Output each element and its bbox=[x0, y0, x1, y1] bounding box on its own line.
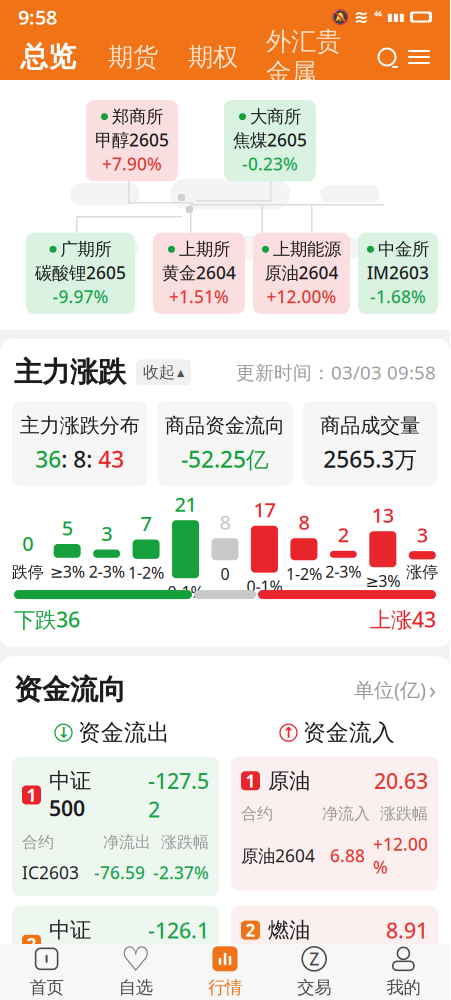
staticText: -127.52 bbox=[148, 767, 209, 823]
button[interactable]: 1 bbox=[231, 757, 438, 891]
staticText: 8 bbox=[298, 509, 309, 535]
staticText: 碳酸锂2605 bbox=[35, 261, 126, 284]
staticText: 9:58 bbox=[18, 4, 57, 30]
button[interactable]: 总览 bbox=[14, 40, 82, 74]
staticText: 首页 bbox=[30, 977, 64, 998]
staticText: 17 bbox=[253, 496, 275, 523]
staticText: 跌停 bbox=[12, 562, 44, 582]
button[interactable]: 中金所 bbox=[358, 233, 438, 314]
button[interactable]: 单位(亿) bbox=[354, 674, 436, 705]
staticText: 中证1000 bbox=[49, 917, 97, 971]
button[interactable]: 外汇贵金属 bbox=[264, 26, 343, 88]
staticText: 单位(亿) bbox=[354, 676, 426, 703]
staticText: 20.63 bbox=[374, 767, 428, 795]
button[interactable]: 行情 bbox=[180, 940, 270, 1000]
staticText: 上期所 bbox=[179, 239, 230, 260]
staticText: 净流出 bbox=[103, 832, 151, 852]
button[interactable]: 菜单 bbox=[402, 40, 436, 74]
staticText: 资金流入 bbox=[303, 719, 395, 747]
staticText: 21 bbox=[174, 491, 196, 517]
button[interactable]: 2 bbox=[12, 906, 219, 1000]
staticText: 2 bbox=[338, 521, 349, 548]
button[interactable]: 广期所 bbox=[26, 233, 135, 314]
staticText: 行情 bbox=[208, 977, 242, 998]
staticText: ≋ bbox=[354, 7, 369, 27]
button[interactable]: 郑商所 bbox=[86, 100, 178, 181]
staticText: 8 bbox=[73, 444, 86, 474]
staticText: 广期所 bbox=[60, 239, 111, 260]
staticText: 主力涨跌 bbox=[14, 355, 126, 389]
staticText: 资金流出 bbox=[78, 719, 170, 747]
staticText: 8.91 bbox=[386, 916, 428, 944]
staticText: -9.97% bbox=[52, 285, 108, 308]
staticText: ⁴⁶ bbox=[374, 10, 382, 24]
staticText: 中金所 bbox=[378, 239, 429, 260]
staticText: : bbox=[61, 444, 73, 474]
button[interactable]: 大商所 bbox=[224, 100, 316, 181]
staticText: 我的 bbox=[386, 977, 420, 998]
staticText: › bbox=[429, 674, 436, 705]
button[interactable]: ♡ bbox=[91, 940, 180, 1000]
button[interactable]: 期权 bbox=[184, 41, 242, 72]
button[interactable]: 2 bbox=[231, 906, 438, 1000]
staticText: 上涨43 bbox=[370, 605, 436, 633]
staticText: 净流入 bbox=[322, 953, 370, 973]
staticText: 0-1% bbox=[246, 576, 282, 597]
staticText: 2565.3万 bbox=[323, 444, 417, 474]
staticText: +12.00% bbox=[266, 285, 336, 308]
button[interactable]: Z bbox=[270, 940, 359, 1000]
staticText: 🔕 bbox=[331, 9, 349, 25]
staticText: 1-2% bbox=[128, 562, 164, 583]
staticText: 4.12 bbox=[325, 982, 360, 1000]
staticText: 外汇贵金属 bbox=[266, 26, 341, 88]
button[interactable]: 上期所 bbox=[153, 233, 245, 314]
staticText: 涨跌幅 bbox=[380, 804, 428, 824]
staticText: 36 bbox=[35, 444, 61, 474]
staticText: 1-2% bbox=[286, 563, 322, 584]
staticText: 郑商所 bbox=[112, 106, 163, 127]
staticText: 合约 bbox=[22, 832, 54, 852]
staticText: 合约 bbox=[241, 804, 273, 824]
staticText: 2 bbox=[26, 933, 36, 956]
staticText: 交易 bbox=[297, 977, 331, 998]
staticText: 涨停 bbox=[406, 562, 438, 582]
staticText: ▴ bbox=[177, 364, 184, 380]
staticText: 甲醇2605 bbox=[95, 128, 169, 151]
staticText: 1 bbox=[26, 783, 36, 806]
staticText: 0-1% bbox=[167, 581, 203, 602]
staticText: ▮▮▮ bbox=[387, 11, 405, 23]
staticText: ♡ bbox=[121, 940, 151, 978]
staticText: 8 bbox=[219, 509, 230, 535]
staticText: 1 bbox=[245, 769, 255, 792]
staticText: 更新时间：03/03 09:58 bbox=[236, 360, 436, 385]
staticText: +12.00% bbox=[373, 833, 428, 879]
staticText: -76.59 bbox=[94, 861, 145, 884]
button[interactable]: 搜索 bbox=[372, 42, 402, 72]
staticText: 0 bbox=[22, 530, 33, 556]
staticText: 合约 bbox=[22, 982, 54, 1000]
staticText: 商品资金流向 bbox=[165, 413, 285, 438]
staticText: 3 bbox=[417, 522, 428, 548]
staticText: 主力涨跌分布 bbox=[20, 413, 140, 438]
staticText: 2-3% bbox=[89, 561, 125, 582]
button[interactable]: 收起 bbox=[136, 359, 191, 385]
staticText: -0.23% bbox=[242, 152, 298, 175]
staticText: 总览 bbox=[20, 40, 76, 74]
staticText: 3 bbox=[101, 520, 112, 547]
staticText: 2 bbox=[245, 919, 255, 942]
staticText: 中证500 bbox=[49, 768, 91, 822]
button[interactable]: 首页 bbox=[2, 940, 91, 1000]
button[interactable]: 我的 bbox=[359, 940, 448, 1000]
staticText: 原油 bbox=[268, 768, 310, 794]
button[interactable]: 1 bbox=[12, 757, 219, 896]
staticText: 涨跌幅 bbox=[161, 832, 209, 852]
staticText: ≥3% bbox=[50, 561, 85, 582]
staticText: IC2603 bbox=[22, 861, 79, 884]
staticText: 涨跌幅 bbox=[380, 953, 428, 973]
button[interactable]: 上期能源 bbox=[253, 233, 350, 314]
staticText: -52.25亿 bbox=[181, 444, 269, 474]
staticText: 0 bbox=[220, 563, 229, 584]
staticText: 涨跌幅 bbox=[161, 982, 209, 1000]
staticText: : bbox=[86, 444, 98, 474]
button[interactable]: 期货 bbox=[104, 41, 162, 72]
